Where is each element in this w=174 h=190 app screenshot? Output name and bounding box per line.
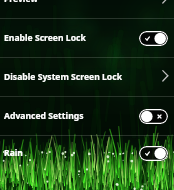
button[interactable]: Open: [154, 69, 168, 85]
staticText: Enable Screen Lock: [4, 32, 86, 44]
button[interactable]: Toggle on: [139, 146, 168, 161]
button[interactable]: Preview: [0, 0, 174, 18]
button[interactable]: Open: [154, 0, 168, 7]
button[interactable]: Rain: [0, 136, 174, 170]
button[interactable]: Toggle off: [139, 109, 168, 124]
button[interactable]: Toggle on: [139, 31, 168, 46]
button[interactable]: Disable System Screen Lock: [0, 58, 174, 96]
button[interactable]: Advanced Settings: [0, 97, 174, 135]
staticText: Preview: [4, 0, 38, 5]
staticText: Disable System Screen Lock: [4, 71, 122, 83]
button[interactable]: Enable Screen Lock: [0, 19, 174, 57]
staticText: Advanced Settings: [4, 110, 84, 122]
staticText: Rain: [4, 147, 23, 159]
